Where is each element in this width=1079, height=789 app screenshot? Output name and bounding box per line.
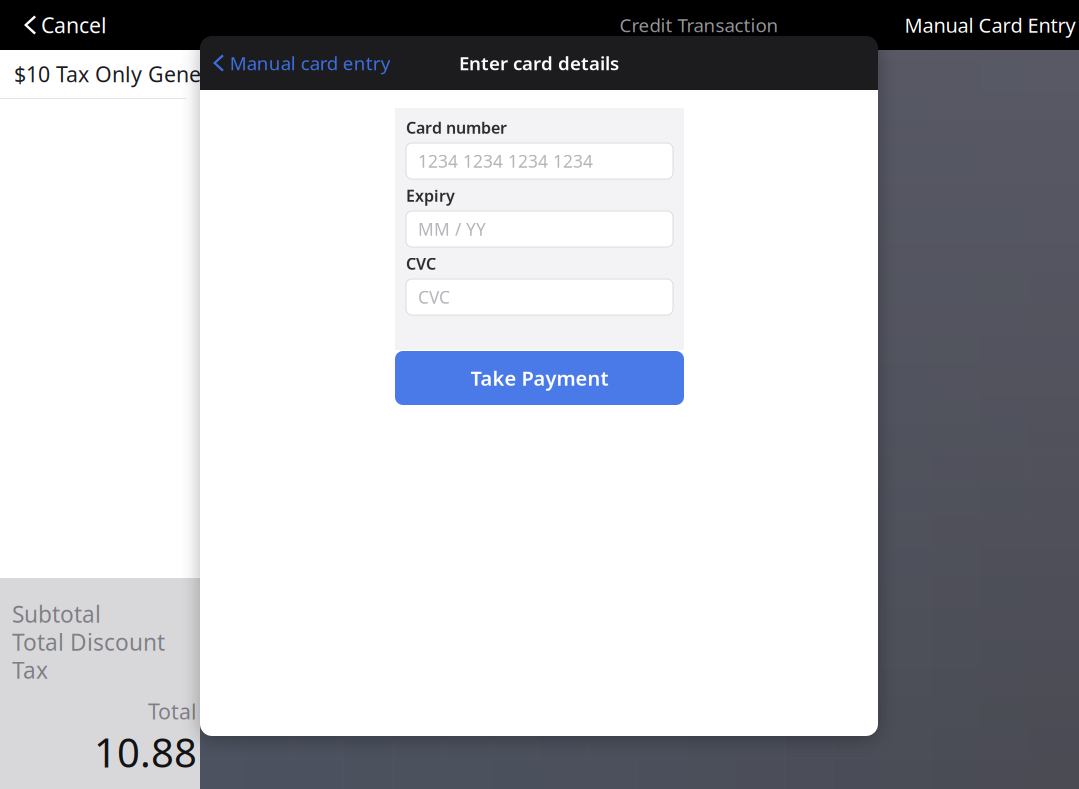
staticText: MM / YY bbox=[418, 217, 486, 240]
staticText: Tax bbox=[12, 655, 48, 685]
button[interactable]: CVC bbox=[406, 279, 673, 315]
staticText: Cancel bbox=[41, 11, 107, 39]
button[interactable]: 1234 1234 1234 1234 bbox=[406, 143, 673, 179]
staticText: Manual Card Entry bbox=[904, 12, 1075, 38]
staticText: $10 Tax Only General bbox=[14, 60, 227, 88]
staticText: Manual card entry bbox=[230, 51, 391, 75]
staticText: Subtotal bbox=[12, 599, 101, 629]
button[interactable]: Take Payment bbox=[395, 351, 684, 405]
staticText: 10.88 bbox=[94, 725, 197, 778]
staticText: Enter card details bbox=[459, 51, 619, 75]
staticText: Card number bbox=[406, 117, 507, 138]
button[interactable]: Manual card entry bbox=[200, 36, 391, 90]
staticText: CVC bbox=[418, 285, 450, 308]
staticText: Total Discount bbox=[12, 627, 165, 657]
staticText: Expiry bbox=[406, 185, 455, 206]
staticText: 1234 1234 1234 1234 bbox=[418, 149, 593, 172]
staticText: Credit Transaction bbox=[619, 13, 778, 37]
button[interactable]: MM / YY bbox=[406, 211, 673, 247]
staticText: Total bbox=[148, 697, 197, 725]
staticText: Take Payment bbox=[470, 365, 608, 391]
button[interactable]: Cancel bbox=[24, 0, 107, 50]
staticText: CVC bbox=[406, 253, 436, 274]
